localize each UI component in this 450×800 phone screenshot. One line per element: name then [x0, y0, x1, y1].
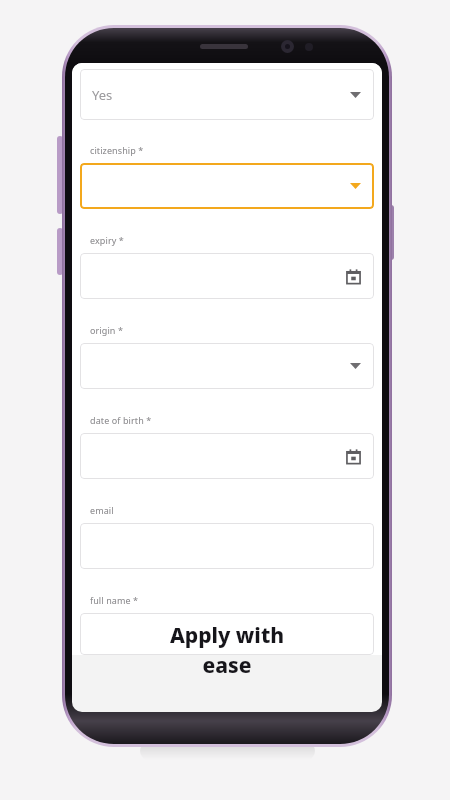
- staticText: Yes: [92, 86, 350, 104]
- button[interactable]: [80, 163, 374, 209]
- button[interactable]: [80, 523, 374, 569]
- staticText: full name *: [90, 594, 139, 606]
- staticText: origin *: [90, 324, 124, 336]
- staticText: citizenship *: [90, 144, 144, 156]
- staticText: email: [90, 504, 114, 516]
- staticText: date of birth *: [90, 414, 152, 426]
- button[interactable]: Volume: [57, 136, 63, 214]
- staticText: Apply with ease: [72, 621, 382, 679]
- button[interactable]: [80, 613, 374, 655]
- staticText: [92, 625, 361, 643]
- button[interactable]: Power: [388, 205, 394, 260]
- staticText: expiry *: [90, 234, 124, 246]
- button[interactable]: [80, 343, 374, 389]
- button[interactable]: Yes: [80, 69, 374, 120]
- button[interactable]: Bixby: [57, 228, 63, 275]
- button[interactable]: [80, 433, 374, 479]
- button[interactable]: [80, 253, 374, 299]
